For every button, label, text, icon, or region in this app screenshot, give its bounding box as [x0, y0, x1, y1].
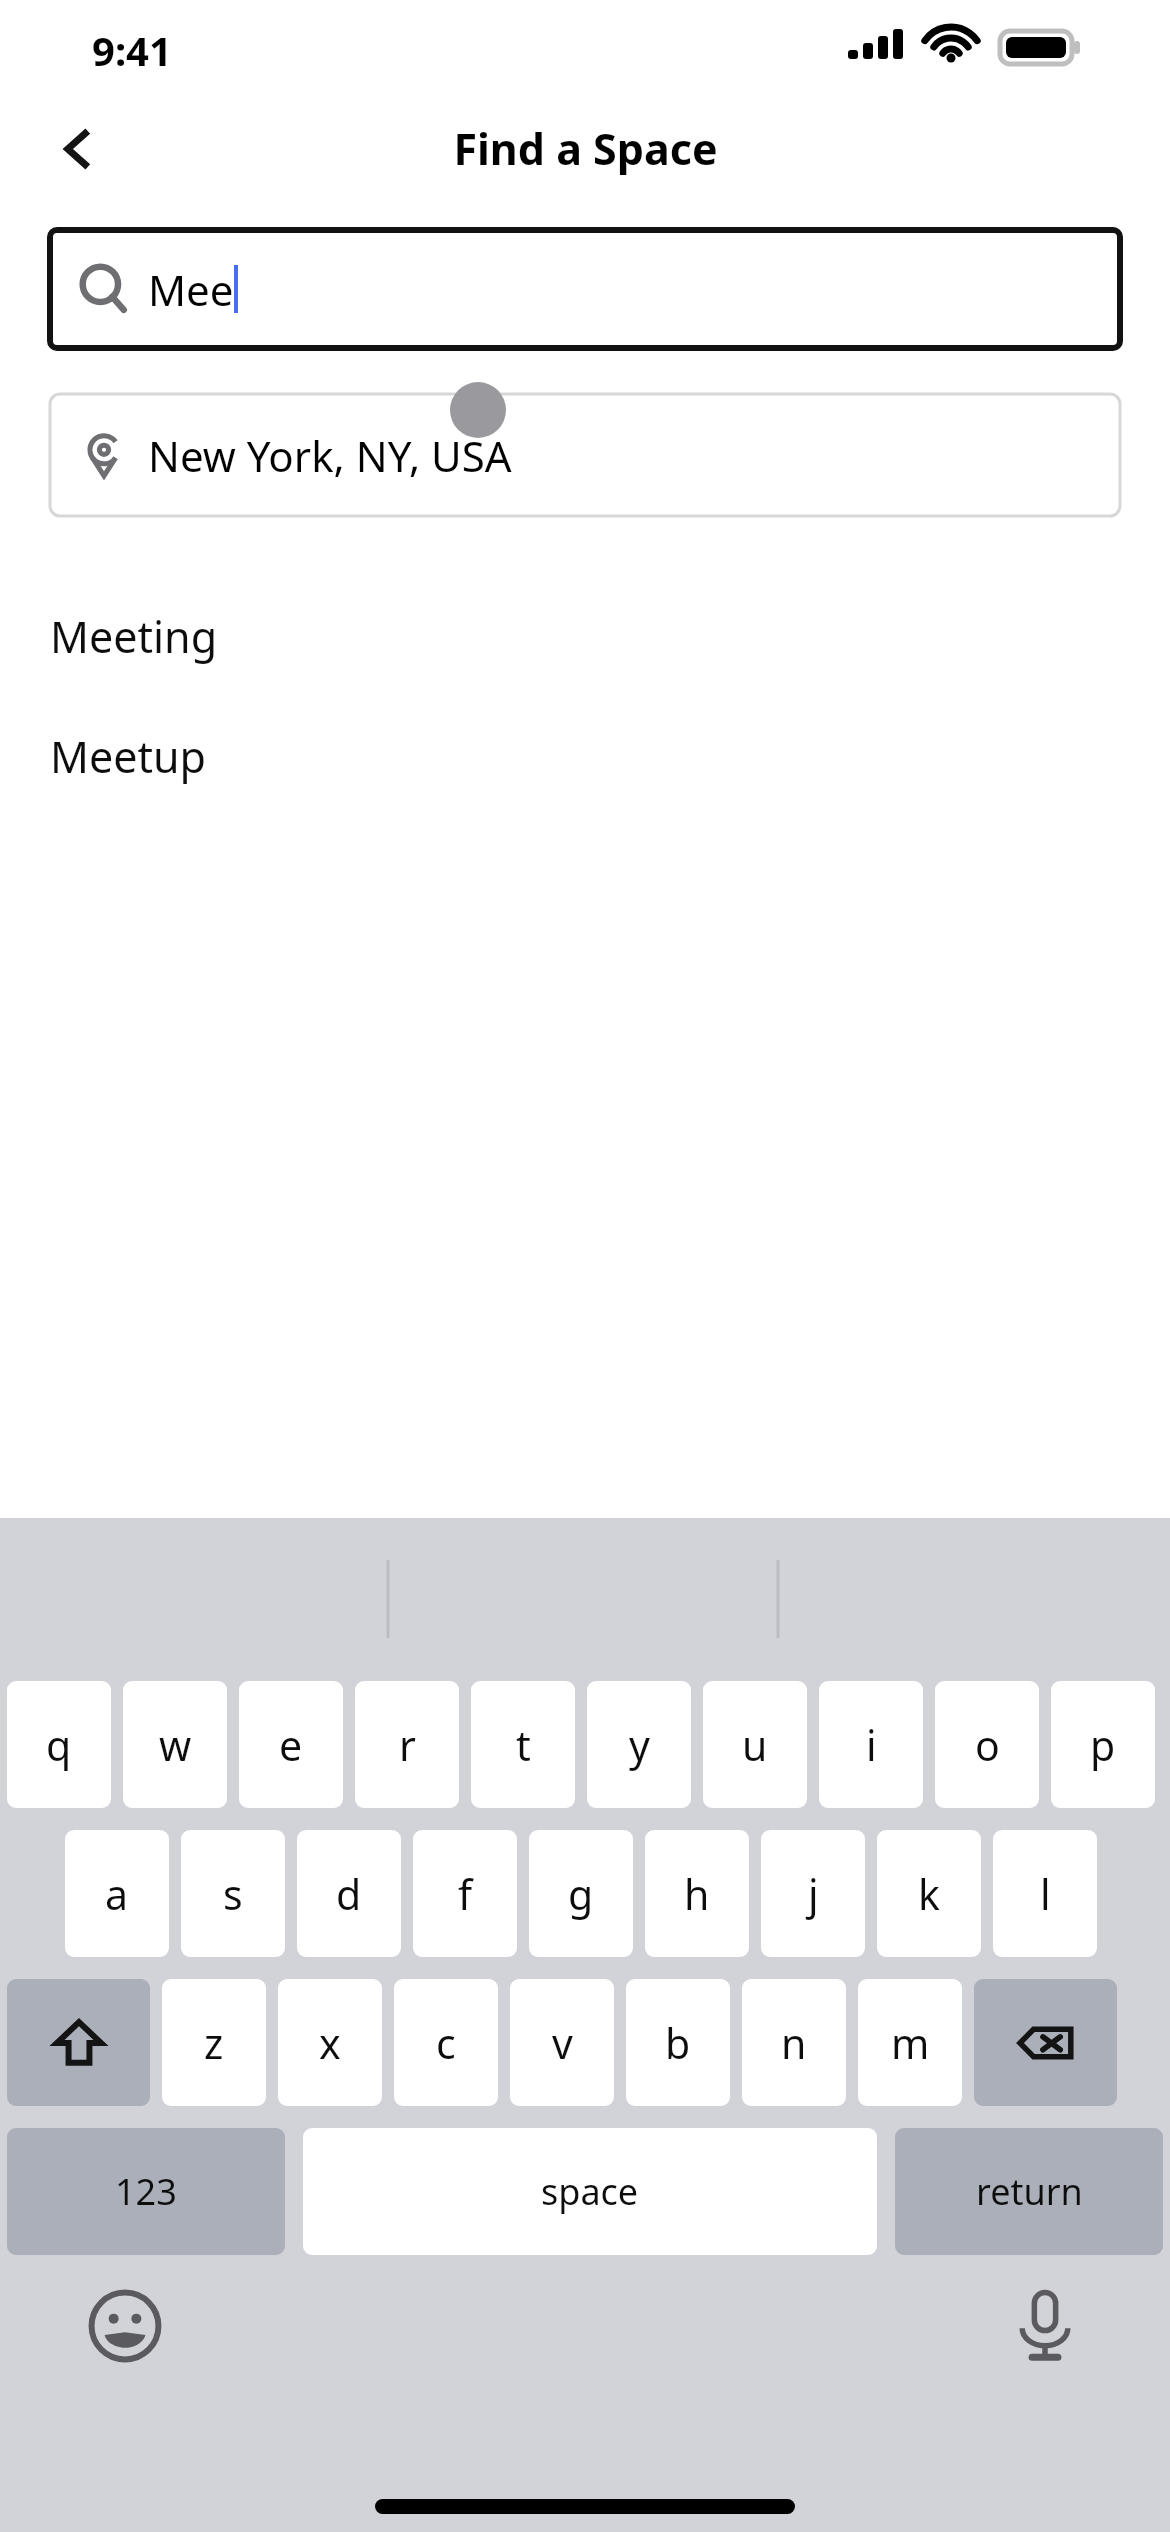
button[interactable]: r [355, 1681, 459, 1808]
staticText: j [808, 1866, 819, 1922]
staticText: z [204, 2015, 224, 2071]
staticText: b [665, 2015, 691, 2071]
button[interactable]: s [181, 1830, 285, 1957]
staticText: l [1040, 1866, 1051, 1922]
button[interactable]: q [7, 1681, 111, 1808]
staticText: g [568, 1866, 594, 1922]
button[interactable]: p [1051, 1681, 1155, 1808]
button[interactable]: h [645, 1830, 749, 1957]
staticText: r [399, 1717, 416, 1773]
button[interactable]: g [529, 1830, 633, 1957]
staticText: d [336, 1866, 362, 1922]
button[interactable]: y [587, 1681, 691, 1808]
button[interactable]: return [895, 2128, 1163, 2255]
staticText: q [46, 1717, 72, 1773]
button[interactable]: z [162, 1979, 266, 2106]
staticText: Find a Space [453, 119, 718, 178]
button[interactable]: i [819, 1681, 923, 1808]
staticText: e [279, 1717, 303, 1773]
button[interactable]: Emoji [72, 2273, 178, 2379]
button[interactable]: Mee [50, 230, 1120, 348]
staticText: s [223, 1866, 243, 1922]
button[interactable]: l [993, 1830, 1097, 1957]
button[interactable]: k [877, 1830, 981, 1957]
button[interactable]: Meetup [0, 696, 1170, 816]
staticText: Meeting [50, 607, 218, 666]
staticText: 9:41 [92, 23, 172, 77]
button[interactable]: b [626, 1979, 730, 2106]
button[interactable]: u [703, 1681, 807, 1808]
staticText: h [684, 1866, 710, 1922]
staticText: Mee [148, 261, 234, 318]
staticText: Meetup [50, 727, 207, 786]
button[interactable]: space [303, 2128, 877, 2255]
button[interactable]: w [123, 1681, 227, 1808]
button[interactable]: Shift [7, 1979, 150, 2106]
button[interactable]: a [65, 1830, 169, 1957]
button[interactable]: v [510, 1979, 614, 2106]
button[interactable]: 123 [7, 2128, 285, 2255]
staticText: x [319, 2015, 341, 2071]
button[interactable]: New York, NY, USA [50, 394, 1120, 516]
staticText: u [742, 1717, 768, 1773]
button[interactable]: Meeting [0, 576, 1170, 696]
staticText: c [436, 2015, 456, 2071]
staticText: f [458, 1866, 473, 1922]
button[interactable]: o [935, 1681, 1039, 1808]
staticText: o [975, 1717, 1000, 1773]
button[interactable]: c [394, 1979, 498, 2106]
button[interactable]: d [297, 1830, 401, 1957]
button[interactable]: x [278, 1979, 382, 2106]
staticText: return [976, 2167, 1083, 2216]
button[interactable]: Back [30, 101, 125, 196]
staticText: space [541, 2167, 639, 2216]
staticText: n [781, 2015, 807, 2071]
staticText: t [516, 1717, 531, 1773]
button[interactable]: e [239, 1681, 343, 1808]
staticText: 123 [115, 2167, 177, 2216]
staticText: k [918, 1866, 940, 1922]
button[interactable]: Dictation [992, 2273, 1098, 2379]
staticText: m [891, 2015, 930, 2071]
staticText: y [629, 1717, 650, 1773]
button[interactable]: n [742, 1979, 846, 2106]
staticText: w [159, 1717, 192, 1773]
staticText: p [1090, 1717, 1116, 1773]
staticText: i [866, 1717, 877, 1773]
staticText: New York, NY, USA [148, 427, 512, 484]
button[interactable]: t [471, 1681, 575, 1808]
button[interactable]: f [413, 1830, 517, 1957]
staticText: v [552, 2015, 573, 2071]
button[interactable]: j [761, 1830, 865, 1957]
staticText: a [105, 1866, 129, 1922]
button[interactable]: m [858, 1979, 962, 2106]
button[interactable]: Delete [974, 1979, 1117, 2106]
